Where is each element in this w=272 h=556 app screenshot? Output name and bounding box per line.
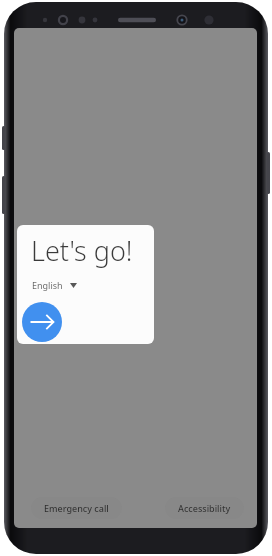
staticText: Let's go!	[31, 232, 133, 269]
button[interactable]: Accessibility	[165, 497, 244, 519]
button[interactable]: Continue	[22, 302, 62, 342]
button[interactable]: English	[31, 277, 78, 293]
staticText: Emergency call	[44, 502, 109, 514]
button[interactable]: Emergency call	[31, 497, 122, 519]
staticText: Accessibility	[178, 502, 231, 514]
staticText: English	[32, 279, 63, 291]
